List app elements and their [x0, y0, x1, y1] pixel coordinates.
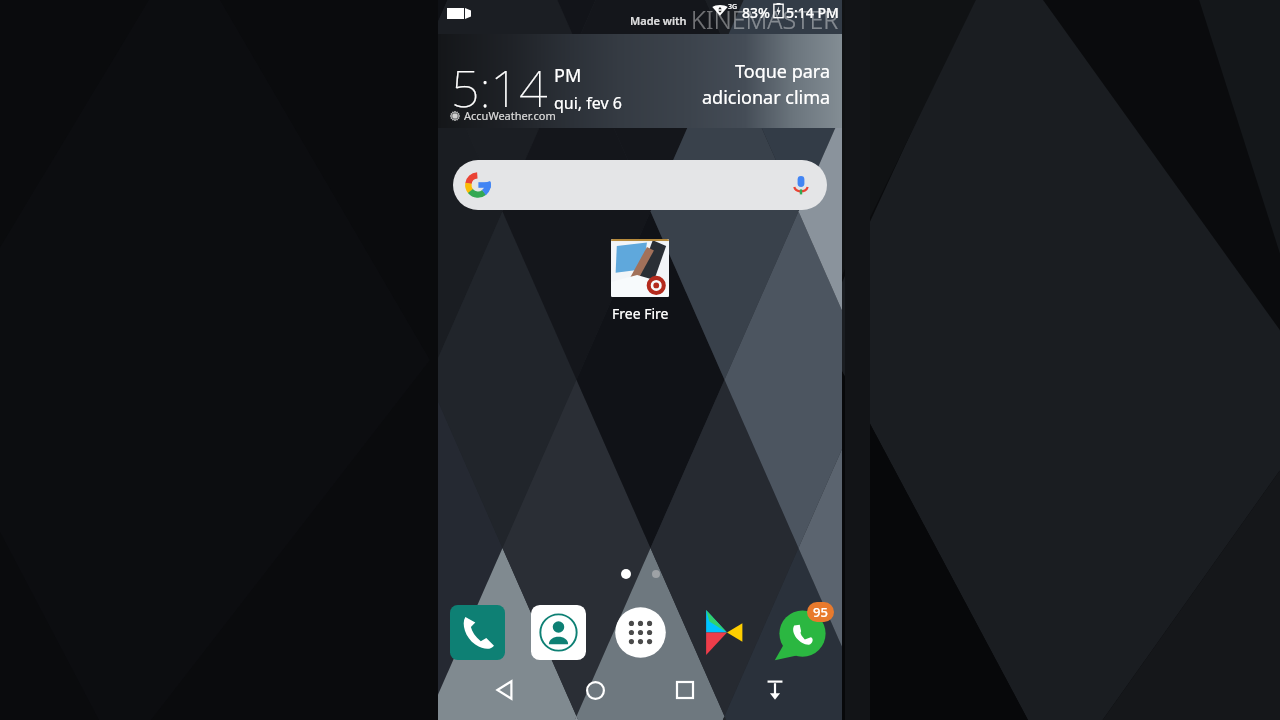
button[interactable]: Hide navigation bar — [752, 667, 798, 713]
staticText: KINEMASTER — [691, 2, 839, 34]
button[interactable]: Back — [482, 667, 528, 713]
button[interactable]: WhatsApp — [775, 605, 830, 660]
button[interactable]: Phone — [450, 605, 505, 660]
button[interactable]: Recents — [662, 667, 708, 713]
button[interactable] — [453, 160, 827, 210]
button[interactable]: 5:14 — [438, 34, 842, 128]
staticText: qui, fev 6 — [554, 92, 622, 114]
button[interactable]: Free Fire — [608, 236, 672, 326]
staticText: Free Fire — [612, 304, 669, 323]
staticText: adicionar clima — [702, 85, 831, 110]
staticText: 83% — [742, 3, 770, 22]
staticText: 3G — [728, 2, 738, 12]
staticText: Toque para — [735, 59, 831, 84]
staticText: 95 — [813, 603, 828, 621]
staticText: Made with — [630, 13, 687, 28]
button[interactable]: Home — [572, 667, 618, 713]
button[interactable]: Play Store — [694, 605, 749, 660]
staticText: PM — [554, 63, 582, 88]
staticText: 5:14 PM — [786, 3, 839, 22]
button[interactable]: All apps — [613, 605, 668, 660]
button[interactable]: Contacts — [531, 605, 586, 660]
staticText: 5:14 — [451, 54, 548, 122]
staticText: AccuWeather.com — [464, 108, 556, 123]
